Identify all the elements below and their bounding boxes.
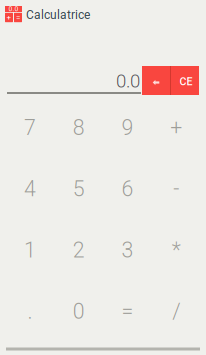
staticText: 3 [121,238,133,263]
staticText: 8 [73,115,85,140]
button[interactable]: * [152,219,201,281]
staticText: 4 [24,176,36,201]
button[interactable]: + [152,97,201,158]
staticText: CE [179,75,192,88]
button[interactable]: 3 [103,219,152,281]
staticText: 5 [73,176,85,201]
staticText: = [121,299,133,324]
staticText: + [170,115,182,140]
button[interactable]: 5 [54,158,103,219]
button[interactable]: 0 [54,281,103,342]
staticText: 6 [121,176,133,201]
staticText: 0 [73,299,85,324]
staticText: . [27,299,32,324]
button[interactable]: 9 [103,97,152,158]
button[interactable]: 8 [54,97,103,158]
button[interactable]: 1 [5,219,54,281]
staticText: 2 [73,238,85,263]
button[interactable]: 4 [5,158,54,219]
staticText: 1 [24,238,36,263]
staticText: * [172,238,181,263]
staticText: + [6,13,11,22]
staticText: 7 [24,115,36,140]
staticText: 0.0 [8,5,18,13]
staticText: = [16,13,20,22]
button[interactable]: / [152,281,201,342]
button[interactable]: = [103,281,152,342]
staticText: Calculatrice [26,8,90,22]
staticText: 0.0 [116,70,140,92]
button[interactable]: 2 [54,219,103,281]
button[interactable]: Backspace [142,66,170,95]
button[interactable]: 7 [5,97,54,158]
staticText: - [173,176,179,201]
staticText: / [172,299,180,324]
button[interactable]: CE [171,66,199,95]
button[interactable]: 6 [103,158,152,219]
staticText: 9 [121,115,133,140]
